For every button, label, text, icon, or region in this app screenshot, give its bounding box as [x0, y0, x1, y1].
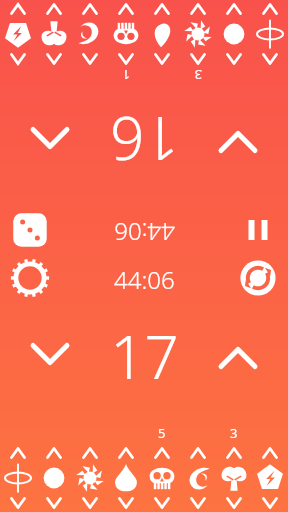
staticText: 5	[158, 424, 166, 442]
button[interactable]: energy counter	[0, 0, 36, 64]
button[interactable]: Reset life totals	[236, 256, 280, 300]
button[interactable]: white counter	[72, 448, 108, 512]
staticText: 44:06	[114, 216, 175, 249]
button[interactable]: commander counter	[216, 0, 252, 64]
button[interactable]: commander counter	[36, 448, 72, 512]
button[interactable]: Decrease life	[20, 110, 80, 170]
button[interactable]: red counter	[72, 0, 108, 64]
button[interactable]: Pause timer	[236, 208, 280, 252]
staticText: 1	[122, 66, 130, 84]
staticText: 16	[110, 99, 179, 181]
staticText: 3	[194, 66, 202, 84]
button[interactable]: 44:06	[114, 263, 175, 296]
button[interactable]: Increase life	[208, 110, 268, 170]
button[interactable]: black counter	[144, 448, 180, 512]
button[interactable]: Settings	[8, 256, 52, 300]
button[interactable]: energy counter	[252, 448, 288, 512]
button[interactable]: green counter	[216, 448, 252, 512]
button[interactable]: Increase life	[208, 326, 268, 386]
button[interactable]: black counter	[108, 0, 144, 64]
staticText: 44:06	[114, 263, 175, 296]
button[interactable]: Decrease life	[20, 326, 80, 386]
button[interactable]: poison counter	[144, 0, 180, 64]
button[interactable]: exp counter	[252, 0, 288, 64]
button[interactable]: Roll dice	[8, 208, 52, 252]
button[interactable]: red counter	[180, 448, 216, 512]
button[interactable]: blue counter	[108, 448, 144, 512]
button[interactable]: exp counter	[0, 448, 36, 512]
button[interactable]: white counter	[180, 0, 216, 64]
staticText: 3	[230, 424, 238, 442]
staticText: 17	[110, 315, 179, 397]
button[interactable]: 44:06	[114, 216, 175, 249]
button[interactable]: green counter	[36, 0, 72, 64]
